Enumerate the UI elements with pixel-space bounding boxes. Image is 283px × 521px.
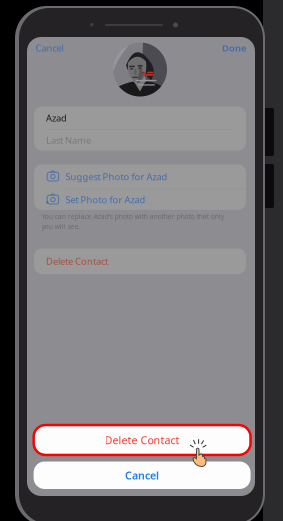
- button[interactable]: Set Photo for Azad: [34, 189, 246, 210]
- staticText: Delete Contact: [105, 433, 180, 447]
- button[interactable]: Delete Contact: [34, 248, 246, 274]
- button[interactable]: Cancel: [34, 461, 251, 489]
- staticText: You can replace Azad's photo with anothe…: [42, 212, 224, 221]
- staticText: Last Name: [46, 134, 91, 146]
- staticText: you will see.: [42, 222, 81, 231]
- staticText: Set Photo for Azad: [65, 193, 145, 206]
- button[interactable]: Cancel: [35, 40, 71, 56]
- staticText: Done: [222, 42, 246, 54]
- staticText: Azad: [46, 112, 67, 124]
- staticText: Delete Contact: [46, 255, 108, 267]
- staticText: Cancel: [125, 468, 159, 482]
- staticText: Suggest Photo for Azad: [65, 170, 167, 183]
- button[interactable]: Suggest Photo for Azad: [34, 164, 246, 189]
- button[interactable]: Done: [216, 40, 246, 56]
- staticText: Cancel: [35, 42, 63, 54]
- button[interactable]: Delete Contact: [34, 425, 251, 455]
